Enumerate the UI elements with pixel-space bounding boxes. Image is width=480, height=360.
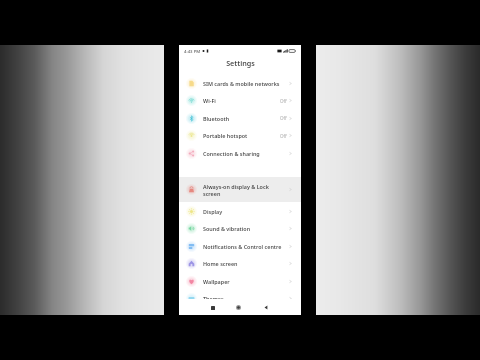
staticText: Always-on display & Lock screen <box>203 183 289 197</box>
staticText: Off <box>280 115 287 121</box>
button[interactable]: Recents <box>206 301 219 314</box>
staticText: Connection & sharing <box>203 150 289 157</box>
staticText: Notifications & Control centre <box>203 243 289 250</box>
button[interactable]: Home screen <box>179 255 301 272</box>
button[interactable]: Back <box>259 301 272 314</box>
staticText: Home screen <box>203 260 289 267</box>
button[interactable]: Connection & sharing <box>179 144 301 162</box>
staticText: Wallpaper <box>203 278 289 285</box>
staticText: Off <box>280 98 287 104</box>
staticText: Bluetooth <box>203 115 280 122</box>
staticText: Themes <box>203 295 289 302</box>
button[interactable]: Home <box>232 301 245 314</box>
button[interactable]: Wi-Fi <box>179 92 301 109</box>
button[interactable]: SIM cards & mobile networks <box>179 74 301 92</box>
button[interactable]: Always-on display & Lock screen <box>179 177 301 202</box>
button[interactable]: Display <box>179 202 301 220</box>
button[interactable]: Themes <box>179 290 301 307</box>
staticText: SIM cards & mobile networks <box>203 80 289 87</box>
staticText: Portable hotspot <box>203 132 280 139</box>
button[interactable]: Wallpaper <box>179 272 301 290</box>
button[interactable]: Bluetooth <box>179 109 301 127</box>
button[interactable]: Sound & vibration <box>179 220 301 237</box>
staticText: Off <box>280 133 287 139</box>
staticText: Sound & vibration <box>203 225 289 232</box>
staticText: Display <box>203 208 289 215</box>
staticText: 4:43 PM <box>184 48 201 54</box>
staticText: Wi-Fi <box>203 97 280 104</box>
button[interactable]: Notifications & Control centre <box>179 237 301 255</box>
button[interactable]: Portable hotspot <box>179 127 301 144</box>
staticText: Settings <box>226 58 255 68</box>
